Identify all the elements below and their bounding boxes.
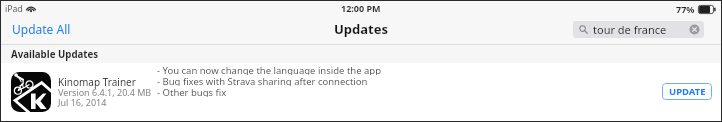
staticText: Updates (334, 20, 388, 38)
staticText: - Other bugs fix (157, 86, 227, 97)
staticText: UPDATE (669, 85, 706, 98)
button[interactable]: Kinomap Trainer (1, 63, 721, 121)
staticText: 12:00 PM (341, 2, 381, 14)
staticText: - Bug fixes with Strava sharing after co… (157, 75, 368, 86)
staticText: Version 6.4.1, 20.4 MB (58, 86, 152, 98)
staticText: iPad (5, 3, 23, 15)
staticText: Available Updates (11, 48, 99, 61)
button[interactable]: UPDATE (662, 83, 712, 100)
button[interactable]: Update All (1, 18, 79, 40)
button[interactable]: tour de france (573, 21, 704, 38)
staticText: - You can now change the language inside… (157, 64, 382, 75)
staticText: 77% (676, 3, 695, 15)
staticText: Jul 16, 2014 (58, 96, 107, 108)
staticText: Update All (12, 21, 71, 37)
staticText: tour de france (593, 22, 667, 37)
staticText: Kinomap Trainer (58, 75, 136, 89)
button[interactable]: Clear search (689, 24, 700, 35)
